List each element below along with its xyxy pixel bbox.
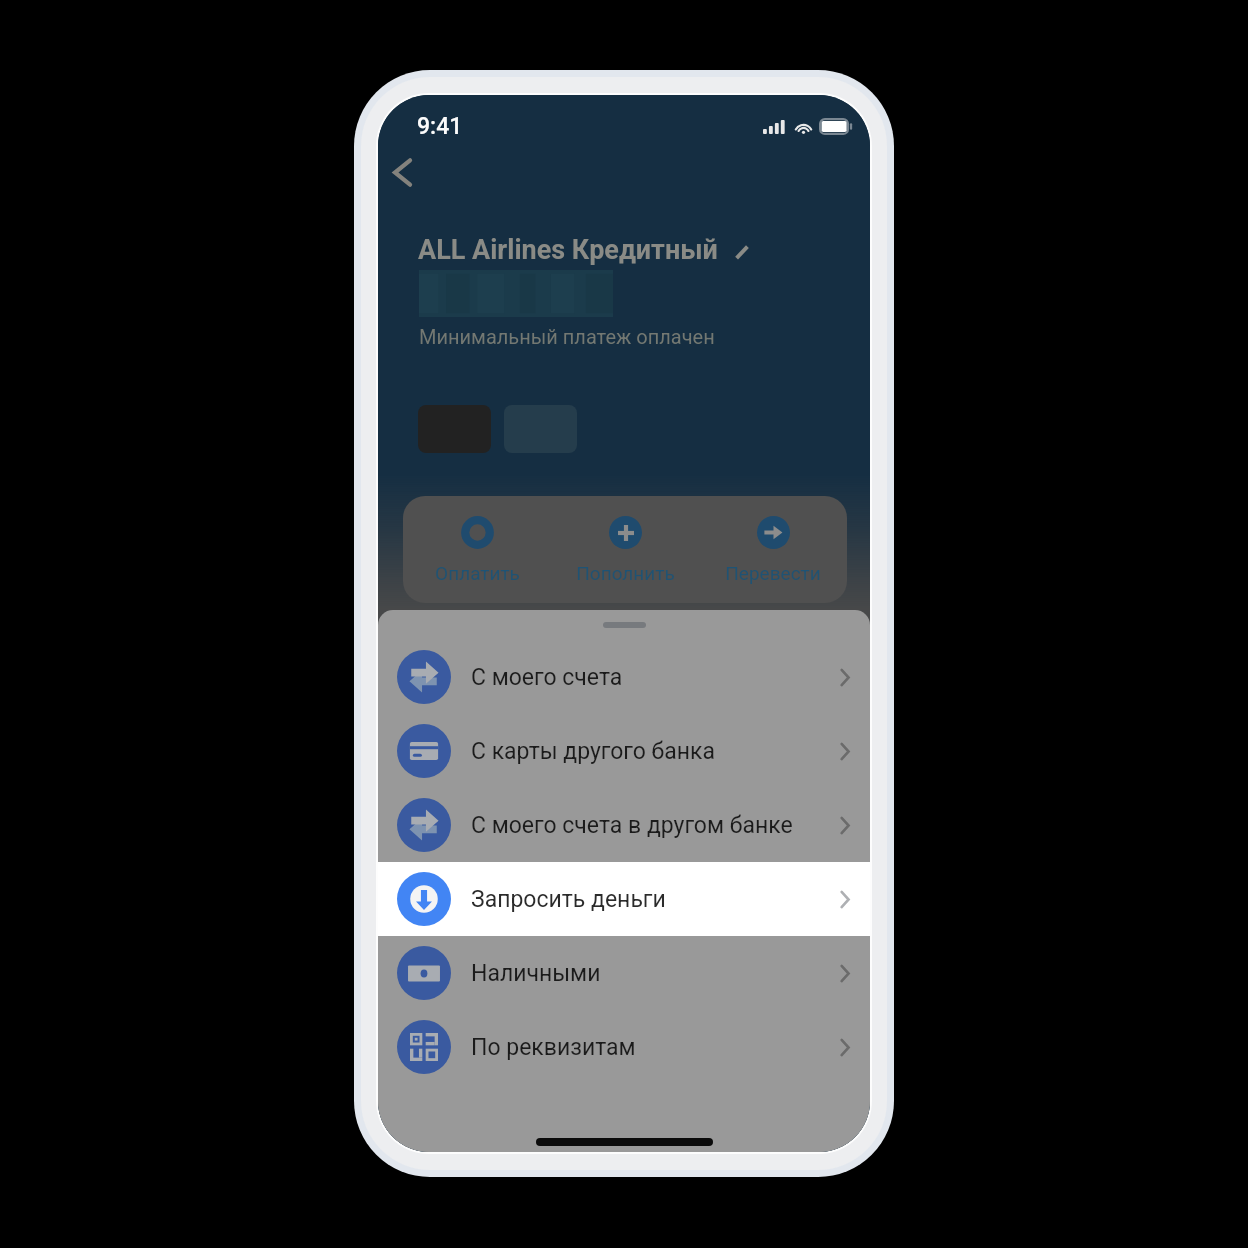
button[interactable]: С моего счета в другом банке bbox=[378, 788, 870, 862]
button[interactable]: Back bbox=[378, 148, 426, 196]
staticText: Оплатить bbox=[435, 562, 520, 584]
button[interactable]: Запросить деньги bbox=[378, 862, 870, 936]
button[interactable]: Перевести bbox=[699, 496, 847, 584]
staticText: Пополнить bbox=[576, 562, 675, 584]
button[interactable]: Пополнить bbox=[551, 496, 699, 584]
staticText: Запросить деньги bbox=[471, 886, 666, 913]
staticText: Перевести bbox=[725, 562, 821, 584]
staticText: ALL Airlines Кредитный bbox=[418, 234, 718, 266]
button[interactable]: С моего счета bbox=[378, 640, 870, 714]
button[interactable]: С карты другого банка bbox=[378, 714, 870, 788]
staticText: С моего счета bbox=[471, 664, 623, 691]
staticText: Минимальный платеж оплачен bbox=[419, 325, 715, 348]
button[interactable]: Rename card bbox=[725, 233, 759, 267]
button[interactable]: Наличными bbox=[378, 936, 870, 1010]
button[interactable]: По реквизитам bbox=[378, 1010, 870, 1084]
staticText: С карты другого банка bbox=[471, 738, 716, 765]
staticText: С моего счета в другом банке bbox=[471, 812, 793, 839]
staticText: По реквизитам bbox=[471, 1034, 636, 1061]
staticText: 9:41 bbox=[417, 113, 463, 140]
button[interactable]: Оплатить bbox=[403, 496, 551, 584]
staticText: Наличными bbox=[471, 960, 601, 987]
